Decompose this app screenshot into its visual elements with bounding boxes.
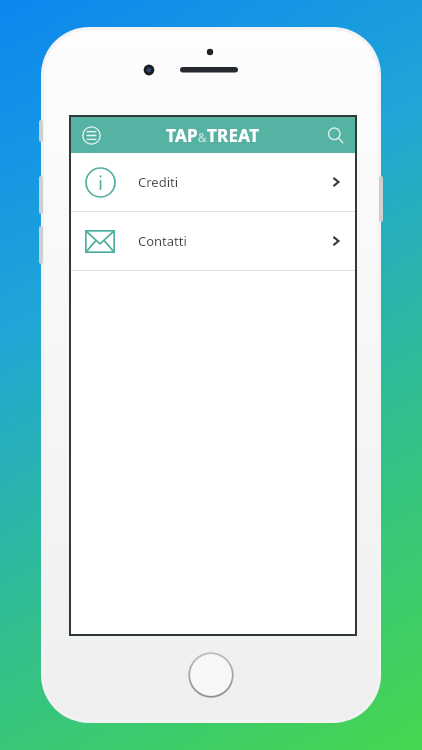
staticText: Crediti <box>138 173 179 191</box>
button[interactable]: Crediti <box>71 153 355 211</box>
button[interactable]: Contatti <box>71 212 355 270</box>
button[interactable]: Menu <box>77 121 105 149</box>
button[interactable]: Search <box>322 122 348 148</box>
staticText: Contatti <box>138 232 187 250</box>
staticText: TAP&TREAT <box>166 124 260 147</box>
